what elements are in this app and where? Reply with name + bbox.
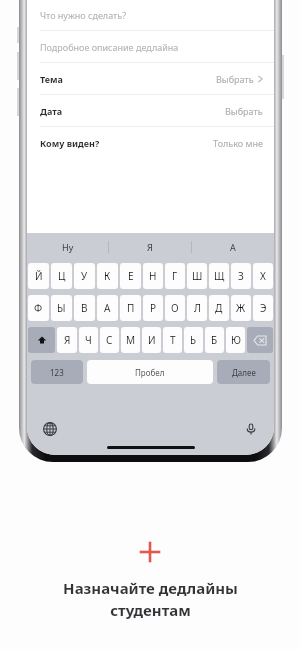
button[interactable]: 123 xyxy=(31,360,83,384)
button[interactable]: Ю xyxy=(226,327,245,353)
button[interactable]: О xyxy=(165,295,185,321)
button[interactable]: Я xyxy=(57,327,77,353)
button[interactable]: Далее xyxy=(217,360,270,384)
staticText: А xyxy=(104,301,111,315)
staticText: Ш xyxy=(192,269,203,283)
staticText: Кому виден? xyxy=(40,137,100,149)
button[interactable]: К xyxy=(97,263,118,289)
button[interactable]: Ш xyxy=(187,263,207,289)
button[interactable]: Я xyxy=(109,233,191,261)
staticText: С xyxy=(106,333,113,347)
staticText: К xyxy=(104,269,111,283)
staticText: У xyxy=(81,269,88,283)
staticText: 123 xyxy=(50,367,64,378)
staticText: М xyxy=(126,333,136,347)
staticText: Тема xyxy=(40,73,63,85)
staticText: Л xyxy=(194,301,201,315)
staticText: Т xyxy=(170,333,176,347)
button[interactable]: Е xyxy=(120,263,141,289)
staticText: А xyxy=(230,241,236,253)
button[interactable]: Кому виден? xyxy=(27,127,274,158)
button[interactable]: Key xyxy=(247,327,273,353)
button[interactable]: Л xyxy=(187,295,207,321)
button[interactable]: Х xyxy=(253,263,273,289)
staticText: Далее xyxy=(232,367,256,378)
button[interactable]: Б xyxy=(205,327,224,353)
staticText: Выбрать xyxy=(225,105,263,117)
staticText: Подробное описание дедлайна xyxy=(40,41,179,53)
staticText: В xyxy=(81,301,88,315)
button[interactable]: Что нужно сделать? xyxy=(27,0,274,30)
button[interactable]: А xyxy=(97,295,118,321)
staticText: Ч xyxy=(85,333,92,347)
button[interactable]: З xyxy=(231,263,251,289)
staticText: Выбрать xyxy=(216,73,254,85)
staticText: Ф xyxy=(34,301,43,315)
staticText: Й xyxy=(35,269,43,283)
staticText: Р xyxy=(150,301,157,315)
button[interactable]: Т xyxy=(163,327,182,353)
staticText: Щ xyxy=(214,269,225,283)
staticText: Что нужно сделать? xyxy=(40,9,127,21)
button[interactable]: Тема xyxy=(27,63,274,94)
button[interactable]: Ф xyxy=(28,295,49,321)
staticText: Только мне xyxy=(213,137,263,149)
staticText: Ь xyxy=(190,333,197,347)
button[interactable]: Г xyxy=(165,263,185,289)
staticText: Е xyxy=(128,269,134,283)
staticText: П xyxy=(127,301,135,315)
button[interactable]: М xyxy=(121,327,140,353)
staticText: Б xyxy=(211,333,218,347)
button[interactable]: Й xyxy=(28,263,49,289)
staticText: Я xyxy=(64,333,71,347)
button[interactable]: В xyxy=(74,295,95,321)
staticText: Дата xyxy=(40,105,63,117)
button[interactable]: Key xyxy=(28,327,55,353)
button[interactable]: Дата xyxy=(27,95,274,126)
staticText: И xyxy=(148,333,156,347)
staticText: Н xyxy=(149,269,157,283)
button[interactable]: Voice input xyxy=(242,420,260,438)
button[interactable]: Подробное описание дедлайна xyxy=(27,31,274,62)
button[interactable]: У xyxy=(74,263,95,289)
button[interactable]: Щ xyxy=(209,263,229,289)
staticText: З xyxy=(238,269,244,283)
button[interactable]: Ж xyxy=(231,295,251,321)
button[interactable]: Пробел xyxy=(87,360,213,384)
staticText: Г xyxy=(172,269,178,283)
button[interactable]: П xyxy=(120,295,141,321)
button[interactable]: Ч xyxy=(79,327,98,353)
staticText: Ц xyxy=(58,269,66,283)
button[interactable]: Switch keyboard language xyxy=(41,420,59,438)
button[interactable]: Д xyxy=(209,295,229,321)
button[interactable]: Ы xyxy=(51,295,72,321)
button[interactable]: Э xyxy=(253,295,273,321)
button[interactable]: С xyxy=(100,327,119,353)
button[interactable]: Ну xyxy=(27,233,108,261)
button[interactable]: А xyxy=(192,233,274,261)
staticText: Х xyxy=(260,269,266,283)
staticText: О xyxy=(171,301,179,315)
staticText: Ю xyxy=(231,333,241,347)
staticText: Д xyxy=(215,301,223,315)
staticText: Пробел xyxy=(135,367,165,378)
button[interactable]: Н xyxy=(143,263,163,289)
button[interactable]: И xyxy=(142,327,161,353)
staticText: Назначайте дедлайны студентам xyxy=(63,578,238,621)
staticText: Ы xyxy=(57,301,66,315)
button[interactable]: Ь xyxy=(184,327,203,353)
button[interactable]: Ц xyxy=(51,263,72,289)
staticText: Э xyxy=(260,301,267,315)
staticText: Я xyxy=(147,241,153,253)
button[interactable]: Р xyxy=(143,295,163,321)
staticText: Ж xyxy=(236,301,246,315)
staticText: Ну xyxy=(62,241,74,253)
